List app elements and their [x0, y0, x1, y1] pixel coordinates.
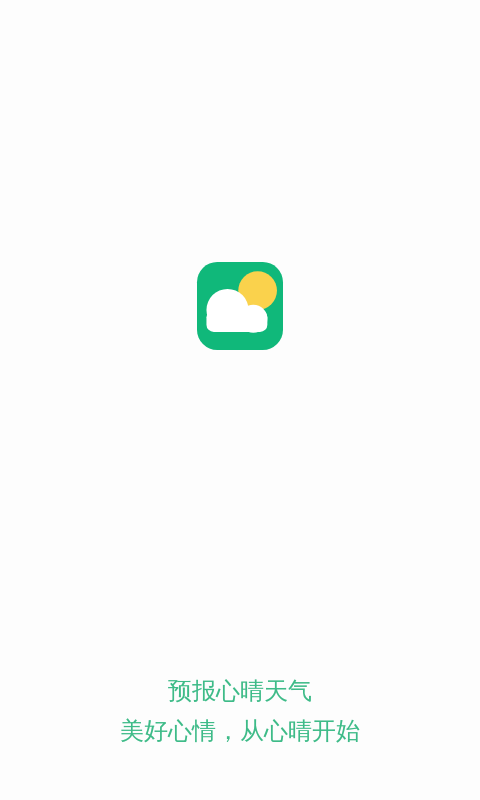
- staticText: 预报心晴天气: [0, 676, 480, 706]
- staticText: 美好心情，从心晴开始: [0, 716, 480, 746]
